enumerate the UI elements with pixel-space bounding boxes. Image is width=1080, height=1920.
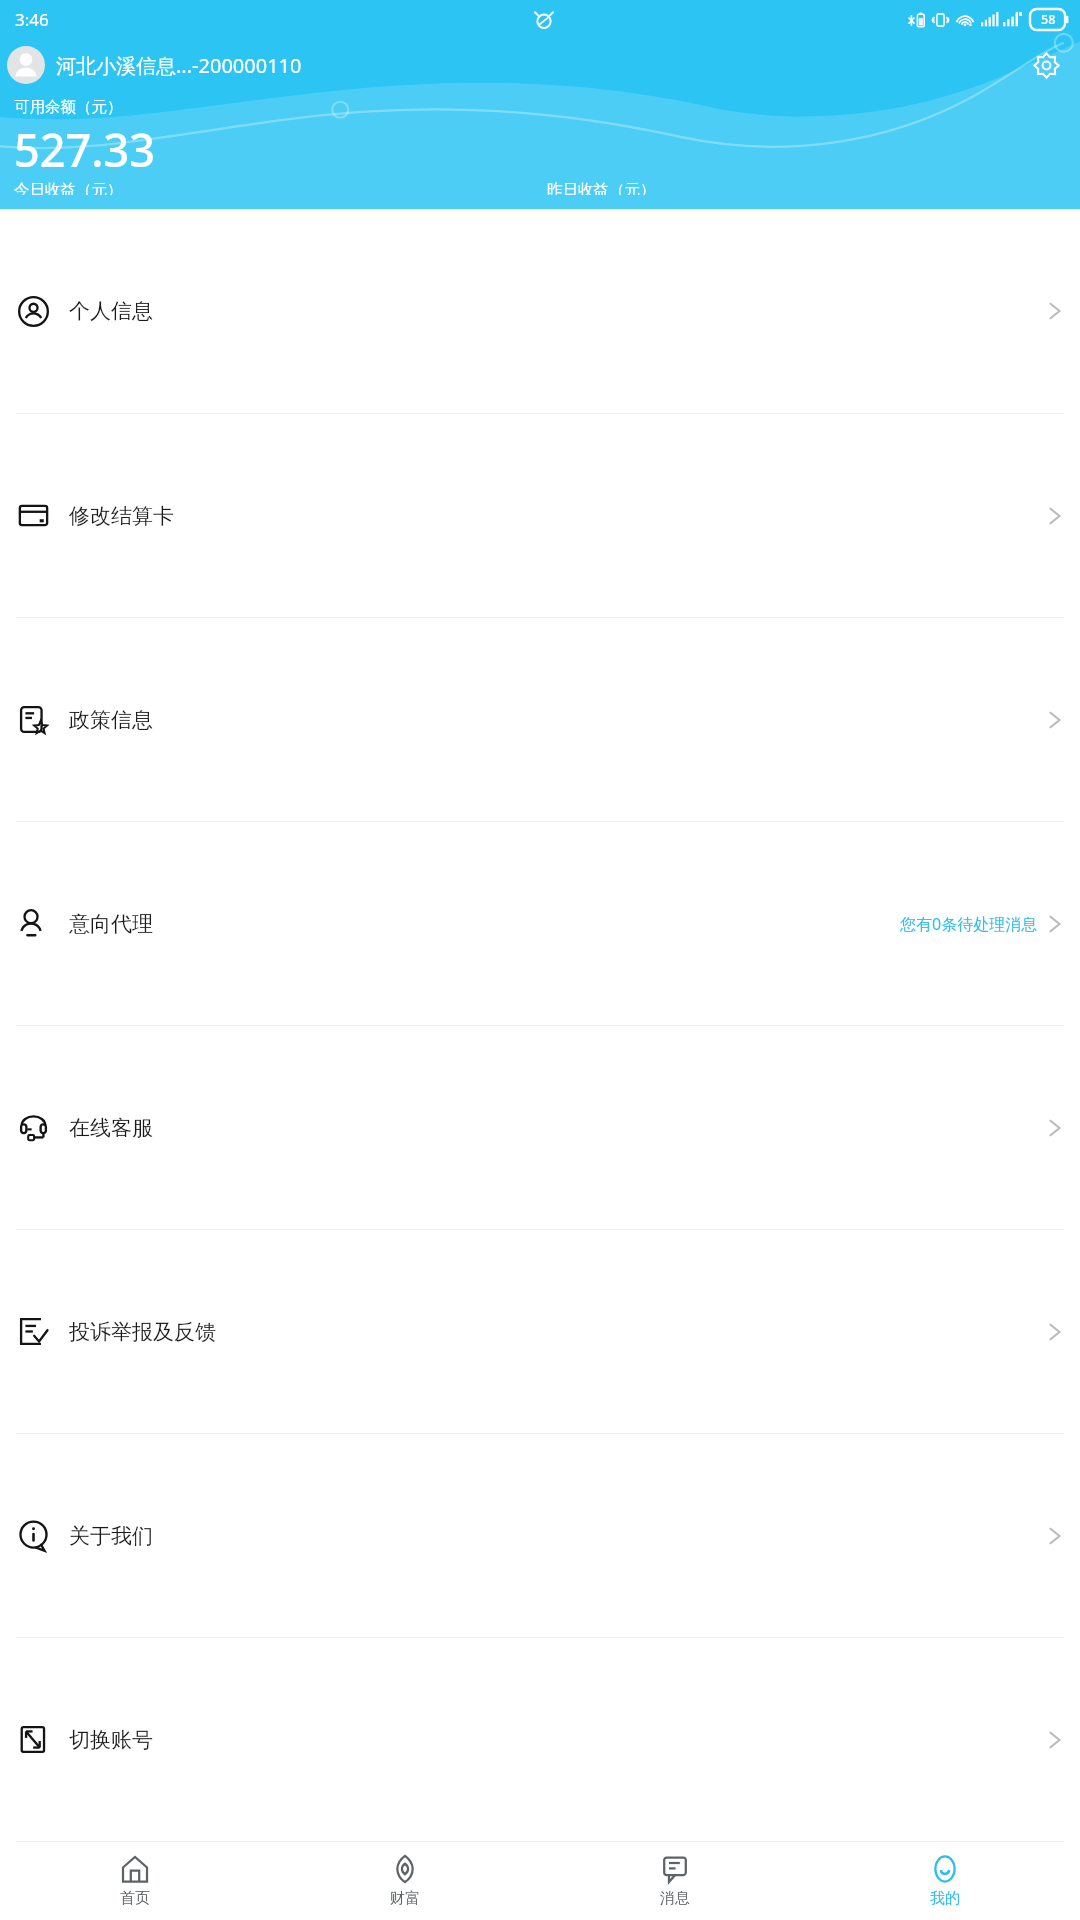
staticText: 58 bbox=[1041, 11, 1056, 28]
staticText: 政策信息 bbox=[69, 707, 153, 733]
staticText: 修改结算卡 bbox=[69, 503, 174, 529]
staticText: 意向代理 bbox=[69, 911, 153, 937]
staticText: 关于我们 bbox=[69, 1523, 153, 1549]
staticText: 您有0条待处理消息 bbox=[900, 913, 1038, 935]
button[interactable]: 切换账号 bbox=[0, 1638, 1080, 1841]
staticText: 3:46 bbox=[15, 8, 49, 31]
button[interactable]: 个人信息 bbox=[0, 209, 1080, 413]
button[interactable]: 关于我们 bbox=[0, 1434, 1080, 1637]
staticText: 527.33 bbox=[14, 119, 155, 180]
button[interactable]: 消息 bbox=[540, 1842, 810, 1920]
button[interactable]: Settings bbox=[1024, 43, 1068, 87]
button[interactable]: 意向代理 bbox=[0, 822, 1080, 1025]
staticText: 个人信息 bbox=[69, 298, 153, 324]
button[interactable]: 在线客服 bbox=[0, 1026, 1080, 1229]
button[interactable]: 修改结算卡 bbox=[0, 414, 1080, 617]
staticText: 财富 bbox=[390, 1889, 420, 1908]
staticText: 在线客服 bbox=[69, 1115, 153, 1141]
staticText: 切换账号 bbox=[69, 1727, 153, 1753]
button[interactable]: 首页 bbox=[0, 1842, 270, 1920]
staticText: 首页 bbox=[120, 1889, 150, 1908]
staticText: 今日收益（元） bbox=[14, 180, 123, 195]
button[interactable]: 投诉举报及反馈 bbox=[0, 1230, 1080, 1433]
staticText: 投诉举报及反馈 bbox=[69, 1319, 216, 1345]
staticText: 消息 bbox=[660, 1889, 690, 1908]
button[interactable]: 政策信息 bbox=[0, 618, 1080, 821]
staticText: 河北小溪信息...-200000110 bbox=[56, 52, 302, 79]
button[interactable]: 我的 bbox=[810, 1842, 1080, 1920]
staticText: 我的 bbox=[930, 1889, 960, 1908]
staticText: 可用余额（元） bbox=[14, 97, 123, 117]
staticText: 昨日收益（元） bbox=[547, 180, 656, 195]
button[interactable]: 财富 bbox=[270, 1842, 540, 1920]
